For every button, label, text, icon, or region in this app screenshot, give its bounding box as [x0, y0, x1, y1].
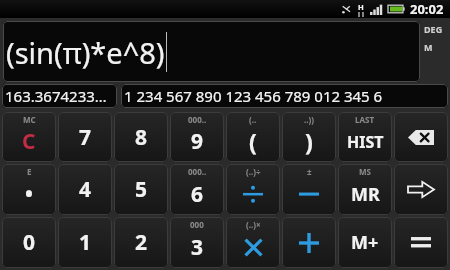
button[interactable]: Plus: [282, 217, 336, 268]
staticText: 20:02: [410, 0, 444, 18]
staticText: 000: [190, 219, 204, 230]
staticText: (: [249, 126, 257, 157]
button[interactable]: Minus: [282, 164, 336, 215]
button[interactable]: ..)): [282, 112, 336, 162]
button[interactable]: Next: [394, 164, 448, 215]
staticText: 7: [79, 123, 92, 152]
button[interactable]: Backspace: [394, 112, 448, 162]
staticText: 5: [135, 175, 148, 204]
staticText: (..)÷: [246, 166, 261, 177]
staticText: MC: [23, 114, 36, 125]
staticText: M: [424, 41, 433, 53]
staticText: ±: [307, 166, 312, 177]
staticText: ..)): [304, 114, 314, 125]
staticText: MS: [359, 166, 371, 177]
staticText: 0: [23, 228, 36, 257]
staticText: M+: [351, 230, 379, 255]
staticText: E: [27, 166, 32, 177]
button[interactable]: 5: [114, 164, 168, 215]
staticText: 1: [79, 228, 92, 257]
button[interactable]: M+: [338, 217, 392, 268]
staticText: 000..: [188, 114, 207, 125]
staticText: 1 234 567 890 123 456 789 012 345 6: [124, 86, 383, 106]
button[interactable]: MC: [2, 112, 56, 162]
button[interactable]: Multiply: [226, 217, 280, 268]
button[interactable]: 000: [170, 217, 224, 268]
button[interactable]: 000..: [170, 112, 224, 162]
staticText: 8: [135, 123, 148, 152]
button[interactable]: (..: [226, 112, 280, 162]
button[interactable]: LAST: [338, 112, 392, 162]
button[interactable]: 0: [2, 217, 56, 268]
staticText: ): [305, 126, 313, 157]
staticText: 163.3674233…: [5, 86, 107, 106]
staticText: •: [25, 180, 33, 209]
staticText: MR: [351, 182, 380, 207]
button[interactable]: E: [2, 164, 56, 215]
button[interactable]: Equals: [394, 217, 448, 268]
staticText: 9: [191, 127, 204, 156]
staticText: 3: [191, 233, 204, 262]
button[interactable]: 7: [58, 112, 112, 162]
staticText: (sin(π)*e^8): [6, 33, 165, 72]
staticText: H: [358, 2, 364, 12]
staticText: 6: [191, 180, 204, 209]
staticText: DEG: [424, 23, 443, 35]
button[interactable]: MS: [338, 164, 392, 215]
button[interactable]: 2: [114, 217, 168, 268]
staticText: C: [22, 127, 36, 156]
button[interactable]: 000..: [170, 164, 224, 215]
staticText: 000..: [188, 166, 207, 177]
button[interactable]: 8: [114, 112, 168, 162]
staticText: LAST: [355, 114, 375, 125]
button[interactable]: 4: [58, 164, 112, 215]
staticText: (..: [249, 114, 257, 125]
staticText: HIST: [347, 131, 384, 153]
staticText: 2: [135, 228, 148, 257]
button[interactable]: 1: [58, 217, 112, 268]
staticText: (..)×: [246, 219, 261, 230]
button[interactable]: Divide: [226, 164, 280, 215]
staticText: 4: [79, 175, 92, 204]
